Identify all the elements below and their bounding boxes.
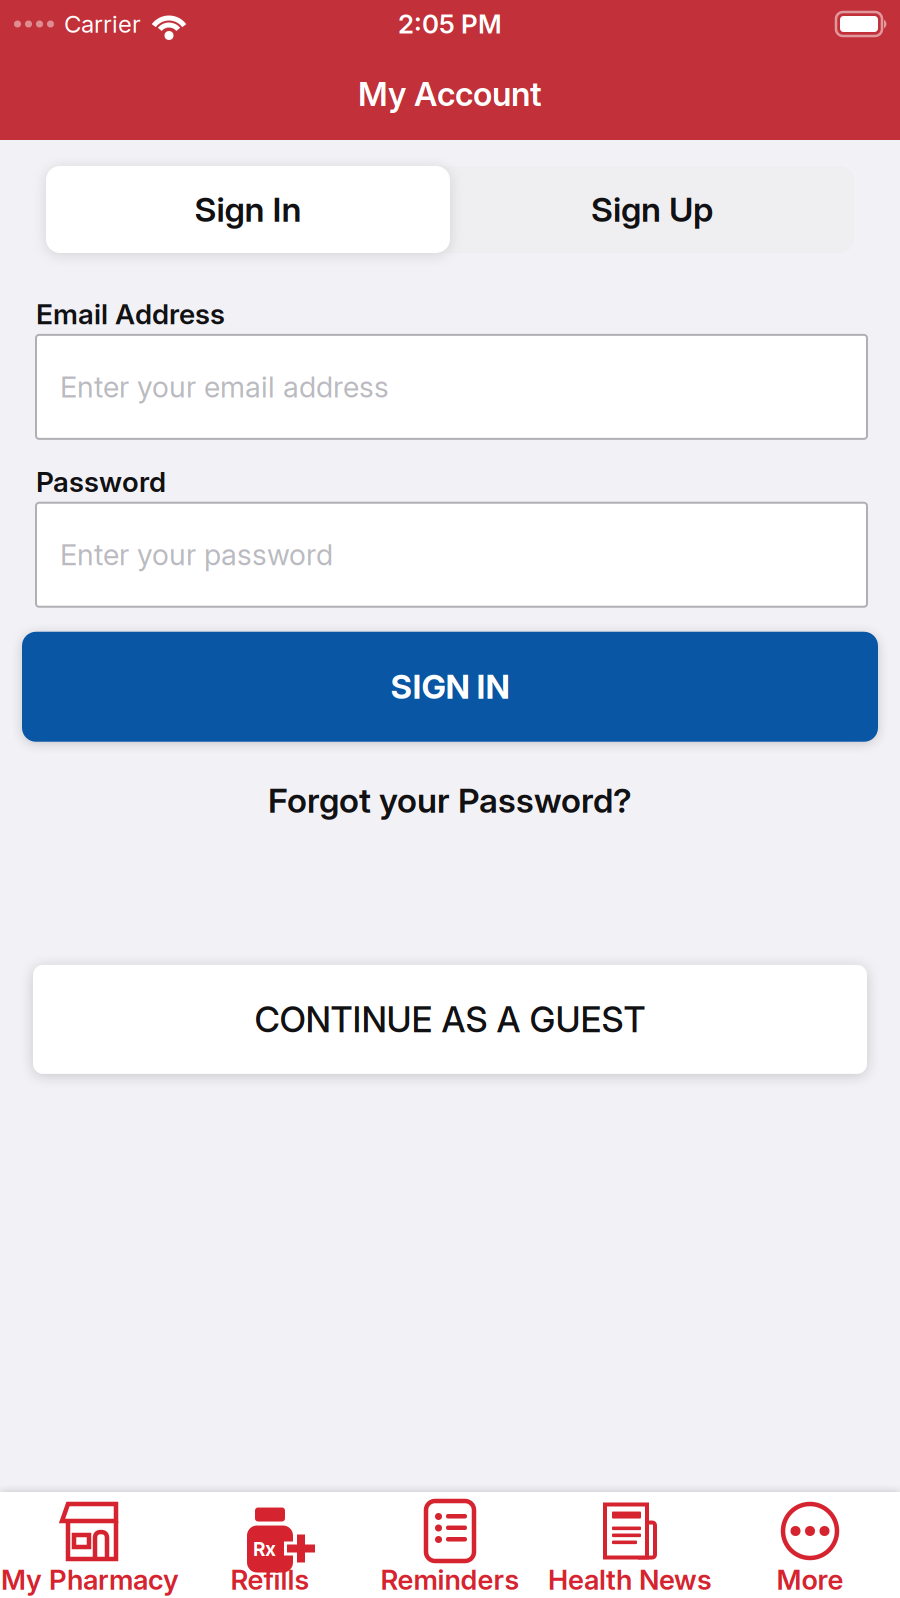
staticText: SIGN IN: [390, 667, 509, 707]
button[interactable]: Forgot your Password?: [268, 780, 632, 821]
staticText: Forgot your Password?: [268, 780, 632, 821]
staticText: My Pharmacy: [1, 1563, 179, 1596]
button[interactable]: Health News: [540, 1492, 720, 1596]
staticText: Health News: [548, 1563, 712, 1596]
button[interactable]: Enter your email address: [36, 335, 867, 439]
staticText: CONTINUE AS A GUEST: [254, 998, 645, 1040]
staticText: Sign In: [194, 189, 301, 230]
button[interactable]: Enter your password: [36, 503, 867, 607]
staticText: More: [776, 1563, 843, 1596]
staticText: Carrier: [64, 9, 141, 38]
staticText: Enter your password: [60, 537, 333, 572]
staticText: 2:05 PM: [398, 8, 502, 40]
staticText: Reminders: [380, 1563, 519, 1596]
staticText: Rx: [253, 1537, 276, 1560]
button[interactable]: SIGN IN: [22, 632, 878, 742]
staticText: Password: [36, 465, 166, 499]
button[interactable]: Rx: [180, 1492, 360, 1596]
staticText: Sign Up: [591, 189, 713, 230]
button[interactable]: More: [720, 1492, 900, 1596]
button[interactable]: CONTINUE AS A GUEST: [33, 965, 867, 1074]
button[interactable]: Sign Up: [450, 166, 854, 253]
button[interactable]: Sign In: [46, 166, 450, 253]
staticText: Refills: [230, 1563, 309, 1596]
staticText: Enter your email address: [60, 369, 389, 404]
button[interactable]: Reminders: [360, 1492, 540, 1596]
staticText: Email Address: [36, 297, 225, 331]
button[interactable]: My Pharmacy: [0, 1492, 180, 1596]
staticText: My Account: [358, 74, 542, 114]
